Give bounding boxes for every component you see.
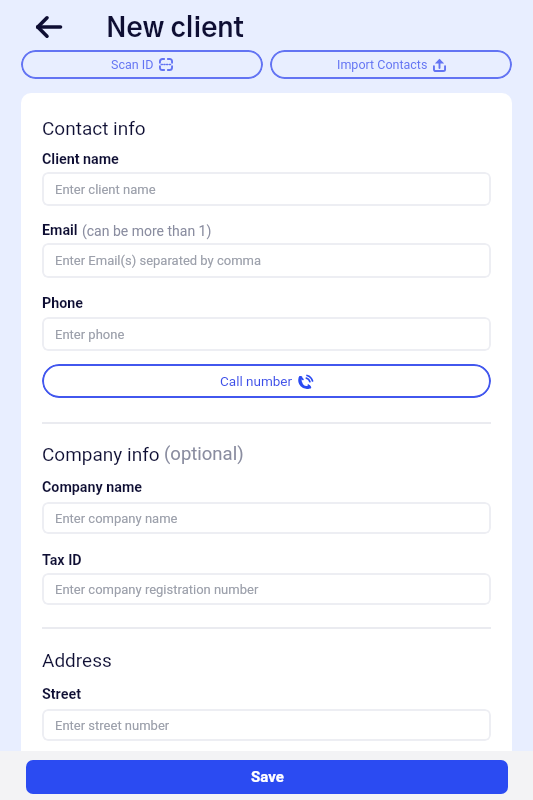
button[interactable]: Enter street number xyxy=(42,709,491,741)
staticText: (can be more than 1) xyxy=(82,223,212,239)
staticText: Email xyxy=(42,222,78,239)
staticText: Enter company name xyxy=(55,511,178,526)
staticText: (optional) xyxy=(164,443,244,465)
staticText: Contact info xyxy=(42,117,146,139)
button[interactable]: Back xyxy=(30,12,68,42)
button[interactable]: Enter phone xyxy=(42,317,491,351)
staticText: Company info xyxy=(42,443,160,465)
button[interactable]: Enter company name xyxy=(42,502,491,534)
staticText: Street xyxy=(42,686,81,703)
staticText: New client xyxy=(106,15,244,43)
button[interactable]: Import Contacts xyxy=(270,50,512,79)
staticText: Enter phone xyxy=(55,327,125,342)
staticText: Save xyxy=(251,768,284,786)
staticText: Call number xyxy=(220,373,293,389)
staticText: Import Contacts xyxy=(337,57,428,72)
button[interactable]: Call number xyxy=(42,364,491,398)
staticText: Client name xyxy=(42,151,119,168)
button[interactable]: Save xyxy=(26,760,508,794)
button[interactable]: Enter company registration number xyxy=(42,573,491,605)
staticText: Enter client name xyxy=(55,182,156,197)
button[interactable]: Enter client name xyxy=(42,172,491,206)
staticText: Scan ID xyxy=(111,57,154,72)
button[interactable]: Enter Email(s) separated by comma xyxy=(42,243,491,278)
staticText: Address xyxy=(42,649,112,671)
staticText: Enter Email(s) separated by comma xyxy=(55,253,262,268)
staticText: Enter company registration number xyxy=(55,582,259,597)
staticText: Company name xyxy=(42,479,143,496)
staticText: Enter street number xyxy=(55,718,170,733)
staticText: Tax ID xyxy=(42,552,82,569)
button[interactable]: Scan ID xyxy=(21,50,263,79)
staticText: Phone xyxy=(42,295,84,312)
